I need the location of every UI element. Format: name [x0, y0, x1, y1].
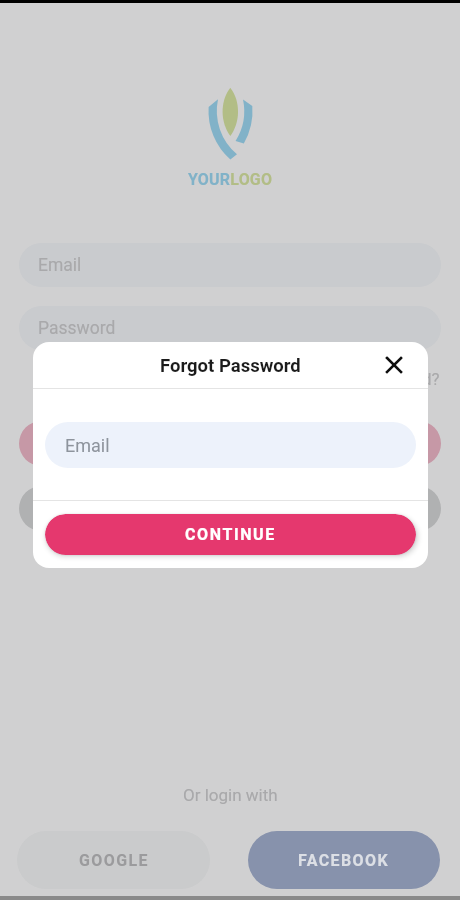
staticText: Password: [38, 318, 116, 339]
staticText: Email: [38, 255, 82, 276]
button[interactable]: Email: [19, 243, 441, 287]
staticText: YOURLOGO: [188, 170, 273, 189]
staticText: Forgot password?: [304, 369, 440, 389]
staticText: Forgot Password: [160, 355, 301, 377]
button[interactable]: SIGN UP: [19, 486, 441, 531]
staticText: CONTINUE: [185, 525, 276, 544]
button[interactable]: LOGIN: [19, 421, 441, 466]
staticText: GOOGLE: [79, 851, 149, 870]
staticText: SIGN UP: [194, 499, 267, 518]
button[interactable]: Close: [380, 351, 408, 379]
button[interactable]: Email: [45, 422, 416, 468]
button[interactable]: Password: [19, 306, 441, 350]
staticText: Email: [65, 435, 110, 456]
button[interactable]: Forgot password?: [304, 369, 440, 389]
button[interactable]: CONTINUE: [45, 514, 416, 555]
button[interactable]: FACEBOOK: [248, 831, 440, 889]
staticText: Or login with: [183, 785, 278, 805]
staticText: FACEBOOK: [298, 851, 390, 870]
button[interactable]: GOOGLE: [17, 831, 210, 889]
